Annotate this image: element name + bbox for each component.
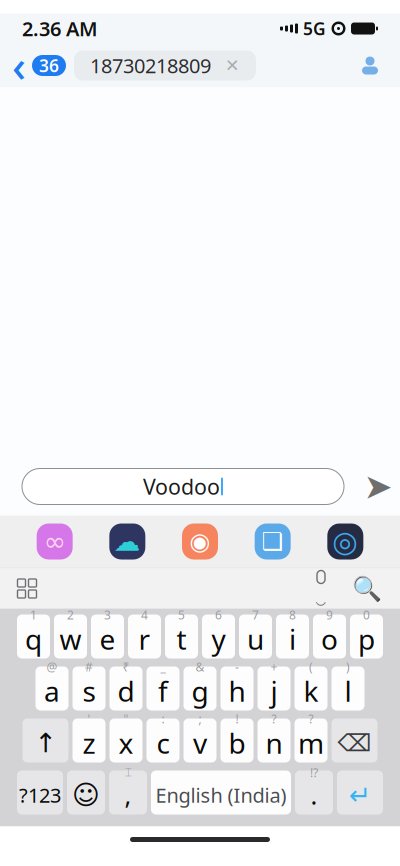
staticText: j [270,672,277,710]
button[interactable]: ' [72,718,105,762]
staticText: 6 [215,607,222,623]
staticText: r [138,620,150,658]
button[interactable]: Search [344,569,390,607]
button[interactable]: 2 [54,614,87,658]
staticText: l [344,672,351,710]
staticText: , [124,778,131,812]
staticText: English (India) [155,782,286,808]
staticText: - [235,659,239,675]
staticText: ‿ [315,583,326,606]
staticText: ‹ [12,37,26,94]
button[interactable] [67,770,105,814]
staticText: ☺ [72,780,100,810]
staticText: ❏ [262,528,284,555]
staticText: 18730218809 [90,52,211,79]
staticText: x [118,724,133,762]
staticText: 5G [303,17,326,40]
button[interactable]: Weather [109,523,145,559]
staticText: # [85,659,93,675]
staticText: ? [308,711,313,727]
button[interactable]: Keyboard options [4,569,50,607]
staticText: ◎ [332,525,358,558]
staticText: ₹ [122,659,129,675]
staticText: 4 [141,607,148,623]
button[interactable] [17,770,63,814]
button[interactable]: Contact info [348,43,392,87]
button[interactable]: 6 [202,614,235,658]
staticText: ◉ [189,528,210,555]
staticText: c [156,724,169,762]
button[interactable]: 18730218809 [74,50,256,80]
staticText: ; [198,711,201,727]
button[interactable]: 3 [91,614,124,658]
staticText: ) [346,659,350,675]
button[interactable]: 1 [17,614,50,658]
staticText: z [82,724,95,762]
button[interactable]: ? [257,718,290,762]
staticText: p [358,620,375,658]
button[interactable]: Back, 36 unread [0,43,66,87]
button[interactable]: ; [183,718,216,762]
button[interactable]: 5 [165,614,198,658]
staticText: ☁ [114,526,141,557]
button[interactable] [22,718,68,762]
button[interactable]: Assistant [327,523,363,559]
staticText: g [191,672,208,710]
staticText: h [228,672,245,710]
button[interactable]: + [257,666,290,710]
button[interactable]: Voice input [298,569,344,607]
staticText: i [289,620,296,658]
staticText: 2 [67,607,74,623]
button[interactable]: ₹ [109,666,142,710]
staticText: + [270,659,277,675]
button[interactable]: : [146,718,179,762]
staticText: o [321,620,338,658]
staticText: v [193,724,207,762]
staticText: 7 [252,607,259,623]
button[interactable]: - [220,666,253,710]
button[interactable]: Send [360,466,396,506]
button[interactable]: Stickers [37,523,73,559]
button[interactable]: 9 [313,614,346,658]
staticText: 5 [178,607,185,623]
staticText: ⌶ [124,767,131,778]
staticText: 3 [104,607,111,623]
button[interactable]: 7 [239,614,272,658]
button[interactable]: !? [295,770,333,814]
staticText: b [228,724,245,762]
button[interactable]: @ [35,666,68,710]
button[interactable]: # [72,666,105,710]
button[interactable] [151,770,291,814]
button[interactable]: _ [146,666,179,710]
button[interactable]: ) [331,666,364,710]
button[interactable]: Location [182,523,218,559]
staticText: a [44,672,60,710]
button[interactable]: ? [294,718,327,762]
staticText: q [25,620,42,658]
staticText: . [310,778,317,812]
button[interactable]: & [183,666,216,710]
button[interactable]: 8 [276,614,309,658]
button[interactable]: 4 [128,614,161,658]
button[interactable]: ⌶ [109,770,147,814]
button[interactable] [331,718,377,762]
staticText: ?123 [19,782,61,808]
staticText: d [117,672,134,710]
staticText: 🔍 [352,575,382,602]
staticText: ' [87,711,90,727]
staticText: m [298,724,324,762]
staticText: & [195,659,204,675]
staticText: 36 [39,54,59,77]
button[interactable]: ! [220,718,253,762]
button[interactable] [337,770,383,814]
button[interactable]: " [109,718,142,762]
staticText: e [99,620,115,658]
button[interactable]: 0 [350,614,383,658]
button[interactable]: ( [294,666,327,710]
staticText: 8 [289,607,296,623]
button[interactable]: Saved [255,523,291,559]
staticText: @ [46,659,57,675]
staticText: 2.36 AM [22,15,98,42]
staticText: ⌫ [337,729,371,757]
staticText: : [161,711,164,727]
